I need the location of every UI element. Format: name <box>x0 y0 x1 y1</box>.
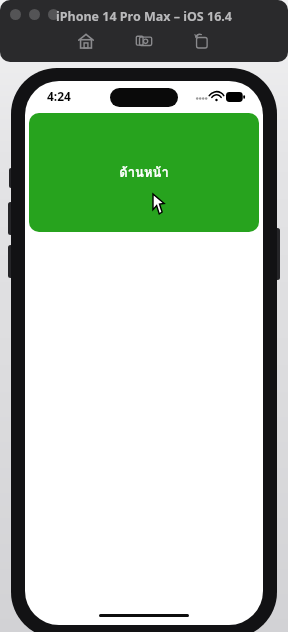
button[interactable]: Close <box>10 9 21 20</box>
button[interactable]: ด้านหน้า <box>29 113 259 232</box>
staticText: 4:24 <box>47 88 71 104</box>
button[interactable]: Zoom <box>48 9 59 20</box>
staticText: iPhone 14 Pro Max – iOS 16.4 <box>56 8 232 25</box>
button[interactable]: Rotate <box>191 30 213 52</box>
button[interactable]: Home <box>75 30 97 52</box>
button[interactable]: Screenshot <box>133 30 155 52</box>
button[interactable]: Minimize <box>29 9 40 20</box>
staticText: ด้านหน้า <box>119 162 169 183</box>
